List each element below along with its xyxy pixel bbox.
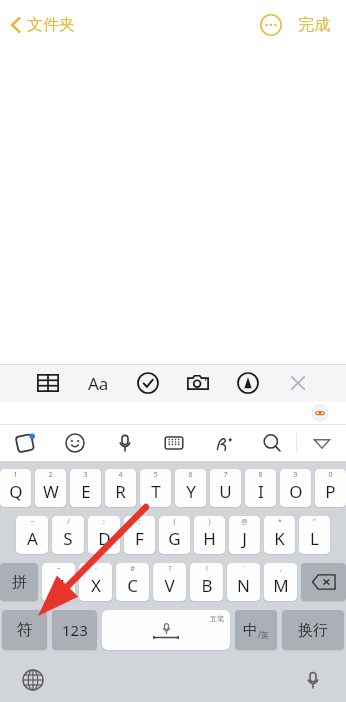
button[interactable]: ~ [42,563,75,601]
staticText: 符 [17,620,33,640]
staticText: 9 [293,470,298,480]
staticText: 拼 [12,573,27,592]
staticText: 换行 [298,621,328,640]
button[interactable]: ! [190,563,223,601]
staticText: / [67,517,70,527]
staticText: C [127,574,138,597]
staticText: I [258,480,264,503]
staticText: K [274,527,285,550]
button[interactable]: " [299,516,330,554]
button[interactable]: ~ [16,516,48,554]
button[interactable]: Space [102,610,230,650]
staticText: ; [139,517,141,527]
staticText: 8 [258,470,263,480]
staticText: D [98,527,111,550]
button[interactable]: Backspace [301,563,346,601]
staticText: G [168,527,181,550]
button[interactable]: 文件夹 [6,9,79,41]
button[interactable]: · [79,563,112,601]
button[interactable]: ? [153,563,186,601]
staticText: W [43,480,59,503]
button[interactable]: Sogou input [0,425,50,461]
staticText: @ [241,517,248,527]
button[interactable]: 7 [210,469,241,507]
button[interactable]: 完成 [294,9,334,41]
staticText: 五笔 [210,614,224,623]
button[interactable]: ; [124,516,155,554]
staticText: N [237,574,250,597]
staticText: 3 [83,470,88,480]
button[interactable]: ` [227,563,260,601]
button[interactable]: 0 [315,469,346,507]
staticText: 5 [153,470,158,480]
button[interactable]: ( [159,516,190,554]
button[interactable]: Table [30,365,66,401]
button[interactable]: Keyboard settings [149,425,198,461]
staticText: ? [168,564,172,574]
staticText: # [130,564,135,574]
staticText: E [81,480,91,503]
staticText: ` [243,564,245,574]
button[interactable]: Dictation [296,663,330,697]
staticText: Z [54,574,64,597]
staticText: Q [9,480,23,503]
button[interactable]: Checklist [130,365,166,401]
staticText: M [273,574,289,597]
button[interactable]: Emoji [50,425,100,461]
staticText: Aa [88,372,109,395]
button[interactable]: Camera [180,365,216,401]
staticText: ~ [56,564,61,574]
button[interactable]: 9 [280,469,311,507]
button[interactable]: 拼 [0,563,38,601]
button[interactable]: Change keyboard [16,663,50,697]
button[interactable]: 1 [0,469,31,507]
button[interactable]: * [264,516,295,554]
staticText: /英 [258,629,269,640]
button[interactable]: Handwriting [198,425,247,461]
button[interactable]: : [88,516,120,554]
staticText: J [242,527,247,550]
staticText: , [280,564,282,574]
button[interactable]: 符 [2,610,47,650]
staticText: A [27,527,38,550]
button[interactable]: Text format [80,365,116,401]
staticText: 0 [328,470,333,480]
button[interactable]: 换行 [282,610,344,650]
staticText: H [203,527,216,550]
staticText: 1 [13,470,18,480]
staticText: B [201,574,213,597]
button[interactable]: 4 [105,469,136,507]
button[interactable]: # [116,563,149,601]
staticText: 2 [48,470,53,480]
staticText: * [278,517,282,527]
staticText: Y [186,480,196,503]
button[interactable]: Search [247,425,296,461]
button[interactable]: More options [254,8,288,42]
button[interactable]: 2 [35,469,66,507]
button[interactable]: Collapse [297,425,346,461]
staticText: ) [208,517,211,527]
staticText: 6 [188,470,193,480]
button[interactable]: 6 [175,469,206,507]
staticText: ~ [30,517,35,527]
staticText: 123 [62,620,88,640]
button[interactable]: Markup [230,365,266,401]
staticText: " [313,517,316,527]
staticText: P [325,480,336,503]
button[interactable]: / [52,516,84,554]
button[interactable]: 123 [52,610,97,650]
button[interactable]: ) [194,516,225,554]
button[interactable]: 5 [140,469,171,507]
button[interactable]: Voice input [100,425,149,461]
button[interactable]: 3 [70,469,101,507]
staticText: X [91,574,101,597]
staticText: S [63,527,73,550]
staticText: T [151,480,161,503]
staticText: L [310,527,319,550]
button[interactable]: , [264,563,297,601]
button[interactable]: 8 [245,469,276,507]
button[interactable]: @ [229,516,260,554]
staticText: · [95,564,97,574]
button[interactable]: Close keyboard [280,365,316,401]
button[interactable]: 中 [235,610,277,650]
